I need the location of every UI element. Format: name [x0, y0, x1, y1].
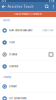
- staticText: AssistiveTouch is turned off: [13, 13, 42, 16]
- staticText: Language: [3, 76, 11, 78]
- staticText: Assistive Touch: [7, 5, 33, 8]
- button[interactable]: New version available: [0, 24, 56, 36]
- staticText: Off screen menu: [9, 97, 26, 100]
- staticText: Start: [9, 41, 15, 44]
- button[interactable]: AssistiveTouch is turned off: [0, 11, 56, 17]
- button[interactable]: Default: [0, 80, 56, 92]
- staticText: Gestures: [9, 65, 18, 68]
- button[interactable]: Off screen menu: [0, 92, 56, 100]
- button[interactable]: Gestures: [0, 60, 56, 72]
- button[interactable]: More options: [50, 2, 56, 11]
- button[interactable]: Back: [0, 2, 7, 11]
- staticText: System: [3, 19, 10, 22]
- button[interactable]: Display: [0, 48, 56, 60]
- staticText: Default: [9, 85, 17, 88]
- staticText: Display: [9, 53, 17, 56]
- button[interactable]: Start: [0, 36, 56, 48]
- staticText: New version available: [9, 29, 32, 32]
- button[interactable]: Search: [43, 2, 50, 11]
- staticText: Update now: [42, 29, 54, 32]
